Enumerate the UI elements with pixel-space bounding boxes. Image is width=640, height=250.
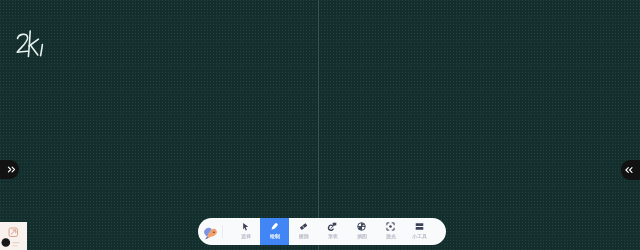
staticText: 擦除 — [299, 233, 309, 239]
button[interactable]: 形状 — [318, 218, 347, 245]
button[interactable]: 插图 — [347, 218, 376, 245]
staticText: 形状 — [328, 233, 338, 239]
staticText: 小工具 — [412, 233, 427, 239]
button[interactable]: Expand left panel — [0, 160, 19, 179]
staticText: 绘制 — [270, 233, 280, 239]
staticText: 激光 — [386, 233, 396, 239]
button[interactable]: 绘制 — [260, 218, 289, 245]
button[interactable]: 小工具 — [405, 218, 434, 245]
button[interactable]: Page thumbnail — [0, 222, 27, 250]
staticText: 选择 — [241, 233, 251, 239]
button[interactable]: Expand right panel — [621, 160, 640, 180]
staticText: 插图 — [357, 233, 367, 239]
button[interactable]: 选择 — [231, 218, 260, 245]
button[interactable]: 擦除 — [289, 218, 318, 245]
button[interactable]: 激光 — [376, 218, 405, 245]
button[interactable]: App logo — [198, 218, 222, 245]
